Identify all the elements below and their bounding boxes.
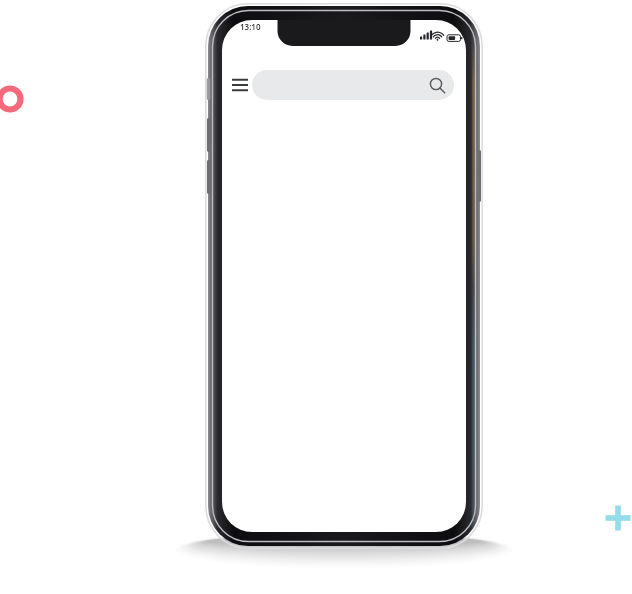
button[interactable]: Open navigation menu — [236, 63, 264, 91]
button[interactable]: Search — [264, 62, 446, 92]
button[interactable]: Submit search — [418, 64, 444, 90]
staticText: 13:10 — [240, 21, 261, 32]
